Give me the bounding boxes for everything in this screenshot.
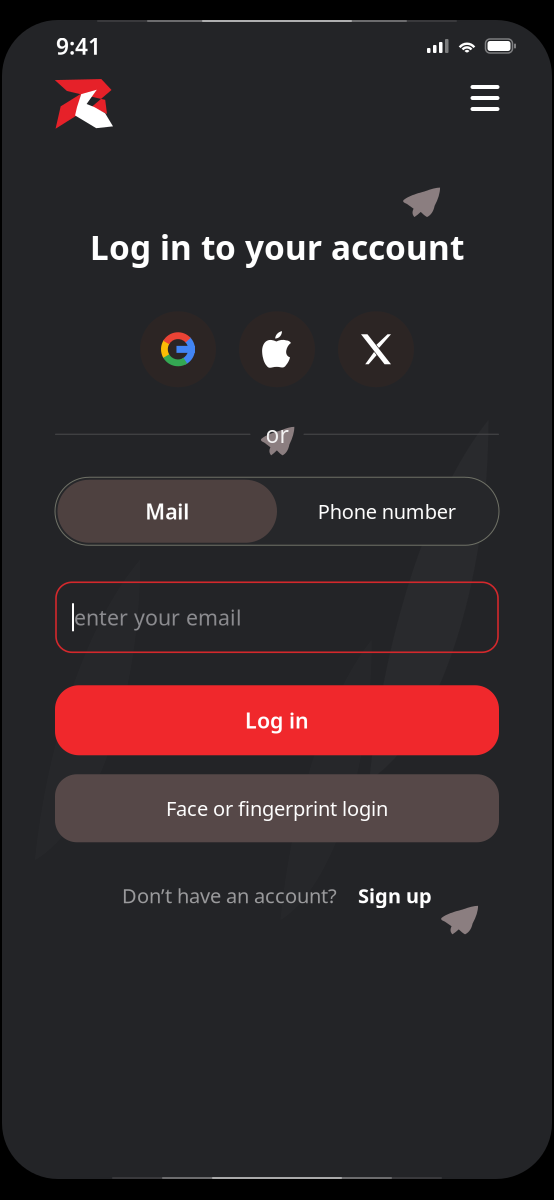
button[interactable]: Sign up: [358, 882, 432, 909]
button[interactable]: Phone number: [277, 480, 496, 543]
staticText: Log in: [245, 706, 309, 734]
staticText: Face or fingerprint login: [166, 795, 388, 822]
staticText: Phone number: [318, 498, 456, 525]
staticText: Don’t have an account?: [122, 882, 337, 909]
button[interactable]: Face or fingerprint login: [55, 774, 499, 842]
staticText: Log in to your account: [90, 225, 464, 269]
button[interactable]: Continue with X: [338, 311, 414, 387]
button[interactable]: Continue with Google: [140, 311, 216, 387]
staticText: enter your email: [74, 603, 242, 631]
staticText: or: [265, 419, 288, 449]
staticText: Sign up: [358, 882, 432, 909]
button[interactable]: Log in: [55, 685, 499, 755]
button[interactable]: Mail: [57, 480, 277, 543]
staticText: Mail: [145, 497, 189, 525]
button[interactable]: Continue with Apple: [239, 311, 315, 387]
staticText: 9:41: [56, 31, 101, 61]
button[interactable]: Menu: [462, 75, 508, 121]
